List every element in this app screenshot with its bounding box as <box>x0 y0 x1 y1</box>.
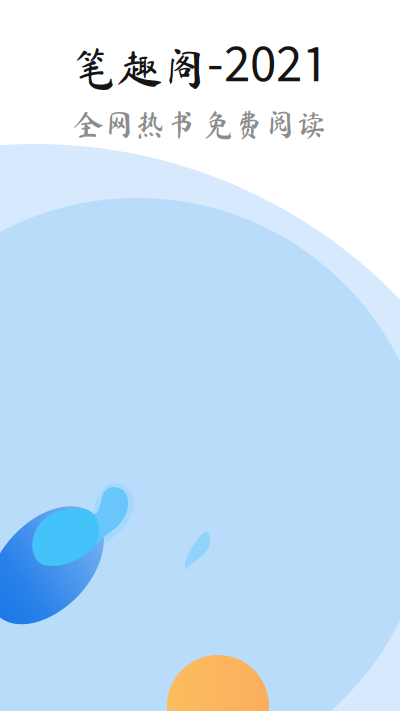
staticText: 全网热书 免费阅读 <box>73 109 327 139</box>
staticText: -2021 <box>207 34 328 90</box>
staticText: 笔趣阁 <box>72 45 207 90</box>
